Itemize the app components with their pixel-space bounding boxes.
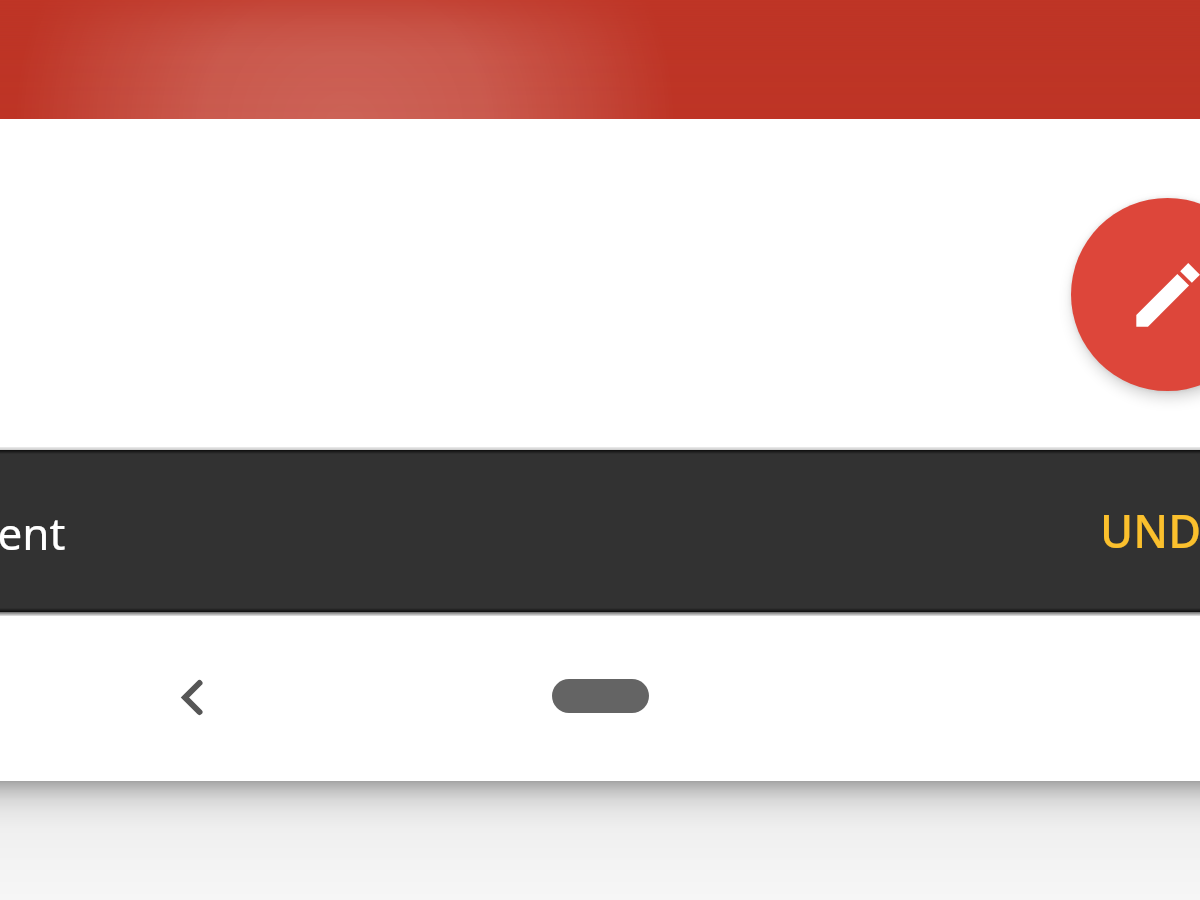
button[interactable]: Home xyxy=(540,648,660,748)
staticText: Email sent xyxy=(0,503,66,563)
button[interactable]: Undo xyxy=(1100,500,1200,561)
button[interactable]: Compose xyxy=(1071,198,1200,391)
button[interactable]: Back xyxy=(142,648,242,748)
staticText: UNDO xyxy=(1100,500,1200,561)
